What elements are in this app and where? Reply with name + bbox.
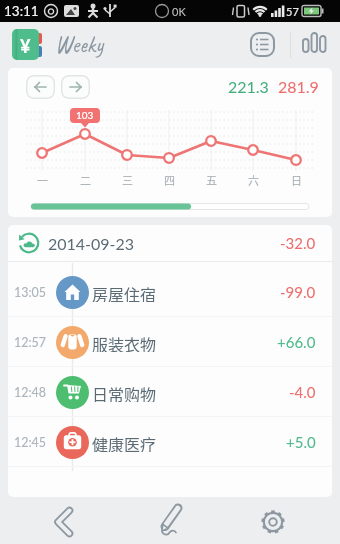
button[interactable]	[246, 28, 280, 62]
staticText: 六	[248, 172, 259, 188]
staticText: 健康医疗	[92, 432, 157, 452]
button[interactable]	[61, 75, 90, 99]
staticText: 221.3	[228, 77, 269, 96]
staticText: 二	[80, 172, 91, 188]
staticText: +5.0	[286, 433, 316, 451]
staticText: 13:05	[14, 285, 47, 300]
staticText: 0K	[172, 5, 186, 18]
staticText: +66.0	[277, 333, 316, 351]
staticText: Weeky	[55, 30, 103, 59]
staticText: ¥	[20, 35, 31, 55]
button[interactable]: 12:57	[8, 317, 332, 367]
staticText: 日常购物	[92, 382, 157, 402]
staticText: 12:48	[14, 385, 47, 400]
button[interactable]: 2014-09-23	[8, 225, 332, 261]
staticText: 五	[206, 172, 217, 188]
staticText: 13:11	[4, 3, 39, 19]
staticText: 2014-09-23	[48, 234, 135, 253]
staticText: 四	[164, 172, 175, 188]
staticText: 281.9	[278, 77, 319, 96]
button[interactable]: 12:48	[8, 367, 332, 417]
button[interactable]: ¥	[12, 29, 44, 61]
button[interactable]: 13:05	[8, 267, 332, 317]
button[interactable]: 12:45	[8, 417, 332, 467]
button[interactable]	[145, 499, 195, 543]
staticText: 一	[37, 172, 48, 188]
button[interactable]	[248, 499, 298, 543]
button[interactable]	[40, 499, 90, 543]
staticText: 12:57	[14, 335, 47, 350]
staticText: -32.0	[280, 234, 316, 252]
staticText: -4.0	[289, 383, 316, 401]
staticText: 三	[122, 172, 133, 188]
staticText: 日	[291, 172, 302, 188]
button[interactable]	[26, 75, 55, 99]
staticText: 12:45	[14, 435, 47, 450]
staticText: 57	[286, 5, 299, 18]
staticText: 103	[76, 109, 94, 121]
button[interactable]	[300, 28, 332, 62]
staticText: 服装衣物	[92, 332, 157, 352]
staticText: 房屋住宿	[92, 282, 157, 302]
staticText: -99.0	[280, 283, 316, 301]
